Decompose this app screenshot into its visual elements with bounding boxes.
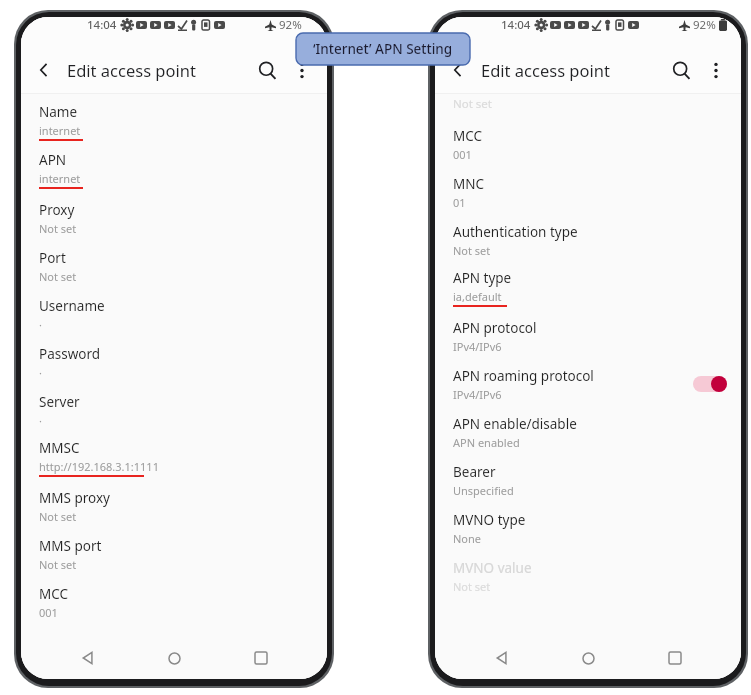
staticText: Not set xyxy=(39,557,77,572)
staticText: IPv4/IPv6 xyxy=(453,387,502,402)
button[interactable]: Bearer xyxy=(435,456,741,504)
staticText: Bearer xyxy=(453,463,496,481)
staticText: 001 xyxy=(39,605,58,620)
staticText: Not set xyxy=(39,509,77,524)
staticText: APN type xyxy=(453,269,512,287)
staticText: Not set xyxy=(453,579,491,594)
staticText: · xyxy=(39,413,42,428)
staticText: Authentication type xyxy=(453,223,578,241)
staticText: APN protocol xyxy=(453,319,537,337)
staticText: IPv4/IPv6 xyxy=(453,339,502,354)
staticText: APN enable/disable xyxy=(453,415,577,433)
staticText: Edit access point xyxy=(481,59,610,81)
staticText: Proxy xyxy=(39,201,75,219)
button[interactable]: More options xyxy=(285,53,319,87)
staticText: internet xyxy=(39,123,81,138)
button[interactable]: MCC xyxy=(435,120,741,168)
staticText: APN roaming protocol xyxy=(453,367,594,385)
staticText: internet xyxy=(39,171,81,186)
staticText: Server xyxy=(39,393,80,411)
staticText: MCC xyxy=(453,127,483,145)
staticText: http://192.168.3.1:1111 xyxy=(39,459,159,474)
staticText: MMSC xyxy=(39,439,80,457)
staticText: MCC xyxy=(39,585,69,603)
button[interactable]: APN protocol xyxy=(435,312,741,360)
button[interactable]: Port xyxy=(21,242,327,290)
button[interactable]: MMSC xyxy=(21,434,327,482)
staticText: None xyxy=(453,531,482,546)
staticText: Port xyxy=(39,249,66,267)
staticText: 92% xyxy=(279,17,302,33)
staticText: MMS proxy xyxy=(39,489,110,507)
staticText: ‘Internet’ APN Setting xyxy=(313,40,453,58)
button[interactable]: Home xyxy=(154,638,194,678)
staticText: Unspecified xyxy=(453,483,514,498)
button[interactable]: Username xyxy=(21,290,327,338)
staticText: 92% xyxy=(693,17,716,33)
staticText: Name xyxy=(39,103,78,121)
button[interactable]: Authentication type xyxy=(435,216,741,264)
button[interactable]: Back xyxy=(441,53,475,87)
staticText: 001 xyxy=(453,147,472,162)
button[interactable]: APN enable/disable xyxy=(435,408,741,456)
staticText: APN xyxy=(39,151,67,169)
button[interactable]: APN roaming protocol xyxy=(435,360,741,408)
staticText: Not set xyxy=(39,221,77,236)
button[interactable]: APN type xyxy=(435,264,741,312)
button[interactable]: Search xyxy=(249,52,285,88)
staticText: · xyxy=(39,365,42,380)
button[interactable]: APN xyxy=(21,146,327,194)
button[interactable]: MNC xyxy=(435,168,741,216)
staticText: Password xyxy=(39,345,101,363)
staticText: MNC xyxy=(453,175,485,193)
staticText: Not set xyxy=(453,96,492,112)
staticText: Edit access point xyxy=(67,59,196,81)
staticText: ia,default xyxy=(453,289,502,304)
button[interactable]: Proxy xyxy=(21,194,327,242)
staticText: 01 xyxy=(453,195,466,210)
button[interactable]: MVNO value xyxy=(435,552,741,600)
staticText: Username xyxy=(39,297,105,315)
staticText: Not set xyxy=(39,269,77,284)
button[interactable]: Recent apps xyxy=(241,638,281,678)
button[interactable]: ‘Internet’ APN Setting xyxy=(296,33,470,65)
staticText: MVNO value xyxy=(453,559,532,577)
button[interactable]: Back xyxy=(68,638,108,678)
button[interactable]: Back xyxy=(482,638,522,678)
button[interactable]: Back xyxy=(27,53,61,87)
button[interactable]: MCC xyxy=(21,578,327,626)
staticText: APN enabled xyxy=(453,435,520,450)
button[interactable]: Home xyxy=(568,638,608,678)
staticText: MVNO type xyxy=(453,511,526,529)
staticText: 14:04 xyxy=(87,17,117,33)
button[interactable]: Name xyxy=(21,98,327,146)
staticText: 14:04 xyxy=(501,17,531,33)
button[interactable]: More options xyxy=(699,53,733,87)
button[interactable]: Search xyxy=(663,52,699,88)
staticText: · xyxy=(39,317,42,332)
button[interactable]: MMS proxy xyxy=(21,482,327,530)
button[interactable]: Recent apps xyxy=(655,638,695,678)
staticText: Not set xyxy=(453,243,491,258)
button[interactable]: APN enable/disable toggle xyxy=(693,376,727,392)
button[interactable]: MVNO type xyxy=(435,504,741,552)
staticText: MMS port xyxy=(39,537,102,555)
button[interactable]: MMS port xyxy=(21,530,327,578)
button[interactable]: Password xyxy=(21,338,327,386)
button[interactable]: Server xyxy=(21,386,327,434)
